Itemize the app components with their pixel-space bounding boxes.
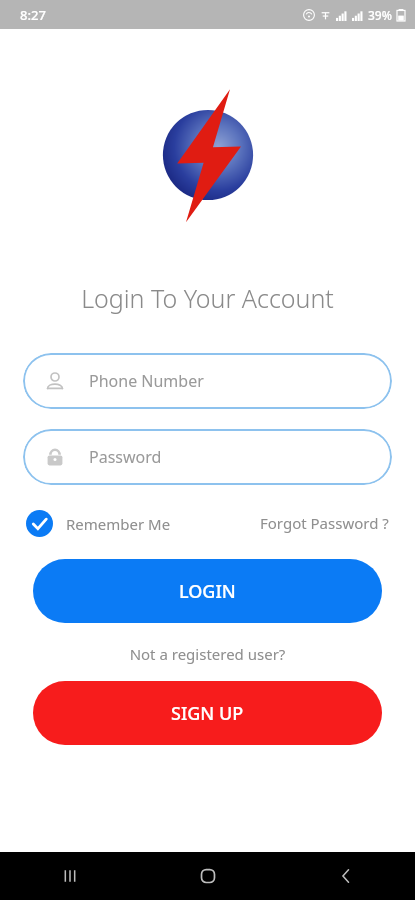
button[interactable]: Password [23,429,392,485]
button[interactable]: SIGN UP [33,681,382,745]
staticText: 39% [368,7,392,23]
staticText: Login To Your Account [0,281,415,315]
staticText: Forgot Password ? [260,513,389,533]
staticText: Phone Number [89,370,204,392]
staticText: 8:27 [20,6,46,24]
button[interactable]: Back [277,852,415,900]
button[interactable]: Home [139,852,277,900]
staticText: SIGN UP [171,701,244,726]
button[interactable]: Not a registered user? [0,644,415,664]
button[interactable]: Phone Number [23,353,392,409]
staticText: LOGIN [179,579,236,604]
staticText: Password [89,446,162,468]
button[interactable]: Forgot Password ? [260,513,389,533]
button[interactable]: Recents [0,852,139,900]
staticText: Remember Me [66,514,171,534]
button[interactable]: Remember Me [26,510,177,537]
button[interactable]: LOGIN [33,559,382,623]
